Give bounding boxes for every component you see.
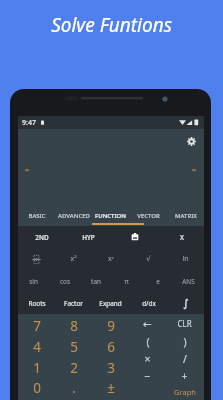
button[interactable]: HYP	[65, 226, 112, 248]
staticText: Graph	[174, 387, 196, 397]
button[interactable]: 3	[92, 357, 129, 378]
staticText: ±	[107, 379, 115, 397]
staticText: −	[144, 369, 151, 383]
button[interactable]: Graph	[165, 385, 205, 399]
staticText: d/dx	[142, 299, 156, 308]
button[interactable]: x²	[55, 248, 92, 270]
staticText: Factor	[64, 299, 83, 308]
staticText: 1	[33, 359, 41, 377]
button[interactable]: X	[158, 226, 205, 248]
button[interactable]: MATRIX	[167, 208, 204, 224]
staticText: Solve Funtions	[51, 12, 172, 38]
button[interactable]: ADVANCED	[55, 208, 92, 224]
staticText: e	[156, 277, 160, 286]
staticText: CLR	[177, 318, 192, 329]
staticText: π	[124, 277, 129, 286]
button[interactable]: Factor	[55, 292, 92, 314]
staticText: ANS	[182, 277, 195, 286]
button[interactable]: ±	[92, 377, 129, 398]
staticText: 0	[33, 379, 41, 397]
button[interactable]: ←	[129, 315, 166, 332]
button[interactable]: √	[130, 248, 167, 270]
button[interactable]: d/dx	[130, 292, 167, 314]
staticText: /	[183, 352, 187, 366]
button[interactable]: FUNCTION	[92, 208, 129, 224]
button[interactable]	[18, 248, 55, 270]
staticText: X	[180, 233, 184, 242]
staticText: 6	[107, 338, 115, 356]
button[interactable]: sin	[18, 270, 49, 292]
staticText: 7	[33, 317, 41, 335]
button[interactable]: BASIC	[18, 208, 55, 224]
button[interactable]: Settings	[184, 134, 198, 148]
button[interactable]: ∫	[167, 292, 204, 314]
button[interactable]: 2ND	[18, 226, 65, 248]
staticText: 4	[33, 338, 41, 356]
button[interactable]: 4	[18, 336, 55, 357]
staticText: 9:47	[22, 118, 36, 128]
button[interactable]: )	[166, 333, 203, 350]
button[interactable]: Roots	[18, 292, 55, 314]
staticText: (	[146, 335, 150, 349]
button[interactable]: 5	[55, 336, 92, 357]
button[interactable]: CLR	[166, 315, 203, 332]
staticText: tan	[91, 277, 101, 286]
staticText: FUNCTION	[95, 212, 126, 220]
button[interactable]: ×	[129, 350, 166, 367]
staticText: )	[183, 335, 187, 349]
staticText: ∫	[183, 297, 189, 310]
staticText: VECTOR	[137, 212, 160, 220]
staticText: ADVANCED	[58, 212, 90, 220]
button[interactable]: .	[55, 377, 92, 398]
staticText: ×	[144, 352, 151, 366]
button[interactable]: cos	[49, 270, 80, 292]
staticText: xᶜ	[108, 254, 114, 264]
button[interactable]: e	[142, 270, 173, 292]
staticText: ←	[143, 318, 152, 330]
button[interactable]: 6	[92, 336, 129, 357]
button[interactable]: +	[166, 367, 203, 384]
staticText: MATRIX	[175, 212, 197, 220]
staticText: √	[146, 255, 151, 263]
staticText: .	[72, 379, 76, 397]
button[interactable]: 1	[18, 357, 55, 378]
button[interactable]: π	[111, 270, 142, 292]
button[interactable]: 2	[55, 357, 92, 378]
staticText: sin	[29, 277, 38, 286]
button[interactable]: −	[129, 367, 166, 384]
button[interactable]: VECTOR	[130, 208, 167, 224]
button[interactable]: ln	[167, 248, 204, 270]
button[interactable]: Expand	[92, 292, 129, 314]
staticText: cos	[60, 277, 70, 286]
button[interactable]: ANS	[173, 270, 204, 292]
staticText: Expand	[99, 299, 122, 308]
button[interactable]: 7	[18, 315, 55, 336]
button[interactable]: xᶜ	[92, 248, 129, 270]
staticText: 2	[70, 359, 78, 377]
staticText: 8	[70, 317, 78, 335]
staticText: Roots	[28, 299, 46, 308]
staticText: ln	[182, 254, 189, 264]
staticText: 5	[70, 338, 78, 356]
button[interactable]: 9	[92, 315, 129, 336]
staticText: 2ND	[35, 233, 49, 242]
staticText: HYP	[82, 233, 95, 242]
staticText: 9	[107, 317, 115, 335]
staticText: +	[181, 369, 188, 383]
button[interactable]: 0	[18, 377, 55, 398]
button[interactable]: 8	[55, 315, 92, 336]
button[interactable]	[111, 226, 158, 248]
staticText: 3	[107, 359, 115, 377]
button[interactable]: tan	[80, 270, 111, 292]
staticText: x²	[70, 254, 77, 264]
staticText: BASIC	[28, 212, 46, 220]
button[interactable]: /	[166, 350, 203, 367]
button[interactable]: (	[129, 333, 166, 350]
